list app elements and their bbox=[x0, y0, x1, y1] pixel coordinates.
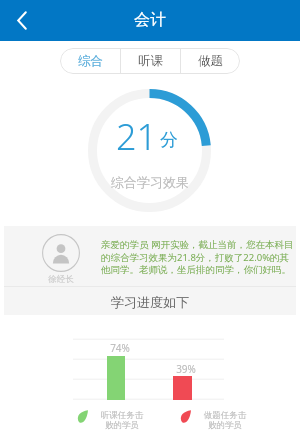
staticText: 分 bbox=[160, 129, 178, 152]
staticText: 听课 bbox=[138, 53, 163, 69]
button[interactable]: Back bbox=[0, 0, 44, 41]
staticText: 综合 bbox=[78, 53, 103, 69]
button[interactable]: 听课 bbox=[121, 48, 180, 74]
staticText: 74% bbox=[100, 341, 140, 355]
staticText: 亲爱的学员 网开实验，截止当前，您在本科目的综合学习效果为21.8分，打败了22… bbox=[101, 238, 297, 276]
staticText: 听课任务击 败的学员 bbox=[99, 410, 145, 431]
staticText: 做题 bbox=[198, 53, 223, 69]
staticText: 学习进度如下 bbox=[0, 294, 300, 310]
button[interactable]: 综合 bbox=[60, 48, 120, 74]
staticText: 会计 bbox=[134, 10, 166, 30]
staticText: 徐经长 bbox=[42, 274, 80, 285]
staticText: 综合学习效果 bbox=[0, 174, 300, 190]
staticText: 39% bbox=[166, 362, 206, 376]
button[interactable]: 做题 bbox=[181, 48, 240, 74]
staticText: 做题任务击 败的学员 bbox=[202, 410, 248, 431]
staticText: 21 bbox=[116, 112, 158, 161]
